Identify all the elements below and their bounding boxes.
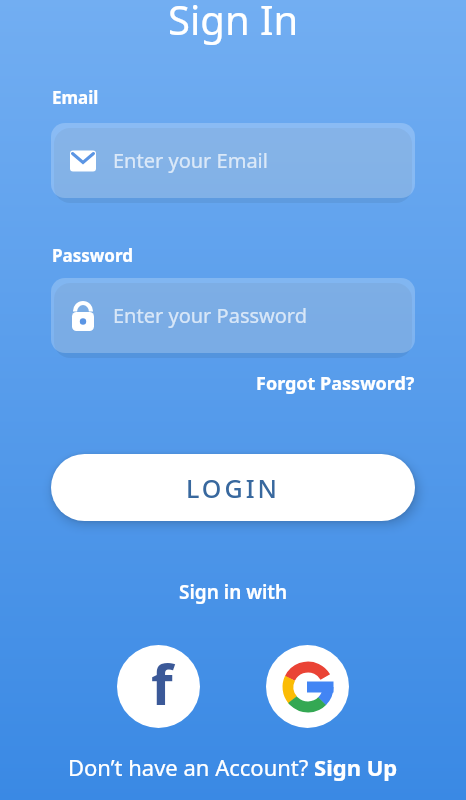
- staticText: Sign In: [168, 0, 299, 46]
- button[interactable]: Enter your Password: [51, 278, 415, 353]
- staticText: f: [151, 645, 173, 721]
- button[interactable]: [266, 645, 349, 728]
- staticText: Email: [52, 86, 99, 109]
- button[interactable]: f: [117, 645, 200, 728]
- staticText: Don’t have an Account? Sign Up: [68, 752, 398, 782]
- button[interactable]: Enter your Email: [51, 123, 415, 198]
- button[interactable]: LOGIN: [51, 454, 415, 521]
- staticText: Enter your Password: [113, 302, 308, 329]
- button[interactable]: Forgot Password?: [256, 371, 415, 396]
- staticText: Sign in with: [179, 579, 288, 605]
- staticText: LOGIN: [186, 471, 280, 505]
- button[interactable]: Don’t have an Account? Sign Up: [0, 752, 466, 782]
- staticText: Password: [52, 244, 133, 267]
- staticText: Enter your Email: [113, 147, 268, 174]
